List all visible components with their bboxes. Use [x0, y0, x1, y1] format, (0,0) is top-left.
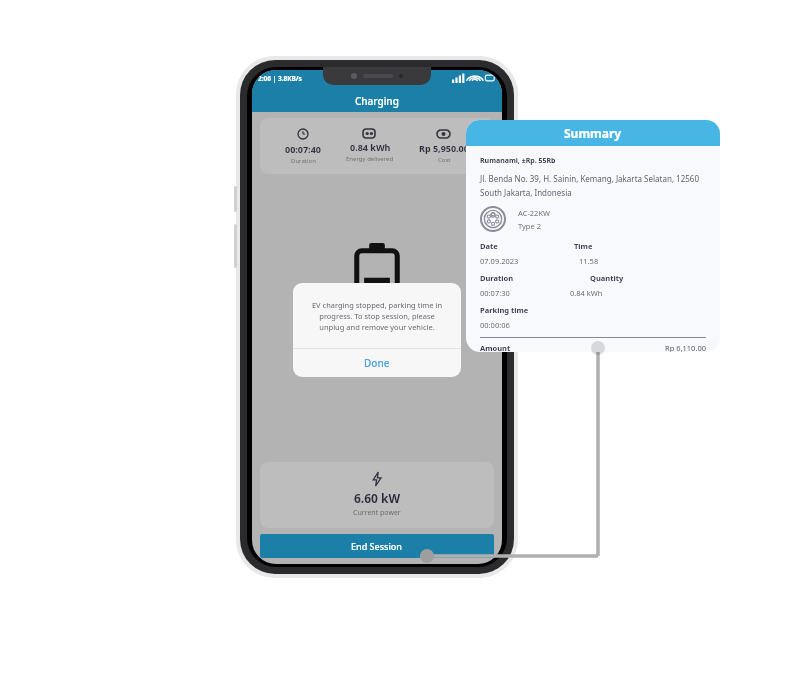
staticText: 11.58: [579, 256, 599, 266]
staticText: Time: [574, 241, 593, 251]
staticText: 6.60 kW: [354, 490, 401, 506]
staticText: 0.84 kWh: [570, 288, 603, 298]
staticText: Parking time: [480, 305, 529, 315]
staticText: Cost: [438, 156, 451, 164]
staticText: Duration: [291, 157, 316, 165]
staticText: 00:07:40: [285, 143, 321, 155]
staticText: Quantity: [590, 273, 624, 283]
staticText: 0.84 kWh: [350, 141, 391, 153]
staticText: Energy delivered: [346, 155, 394, 163]
staticText: South Jakarta, Indonesia: [480, 187, 572, 198]
staticText: Date: [480, 241, 498, 251]
staticText: End Session: [351, 540, 403, 552]
staticText: Rp 6,110.00: [665, 343, 706, 352]
staticText: Type 2: [518, 221, 541, 231]
staticText: Duration: [480, 273, 514, 283]
button[interactable]: Done: [293, 349, 461, 377]
staticText: Current power: [353, 508, 401, 518]
staticText: 00:07:30: [480, 288, 510, 298]
staticText: Rp 5,950.00: [419, 142, 469, 154]
staticText: Summary: [564, 125, 622, 141]
button[interactable]: End Session: [260, 534, 494, 558]
staticText: Done: [364, 356, 390, 370]
staticText: 00:00:06: [480, 320, 510, 330]
staticText: 2:06 | 3.8KB/s: [258, 74, 302, 83]
staticText: EV charging stopped, parking time in pro…: [307, 300, 447, 332]
staticText: Charging: [355, 94, 399, 108]
staticText: Amount: [480, 343, 511, 352]
staticText: AC-22KW: [518, 208, 550, 218]
staticText: 07.09.2023: [480, 256, 519, 266]
staticText: Jl. Benda No. 39, H. Sainin, Kemang, Jak…: [480, 173, 699, 184]
staticText: Rumanami, ±Rp. 55Rb: [480, 156, 556, 166]
